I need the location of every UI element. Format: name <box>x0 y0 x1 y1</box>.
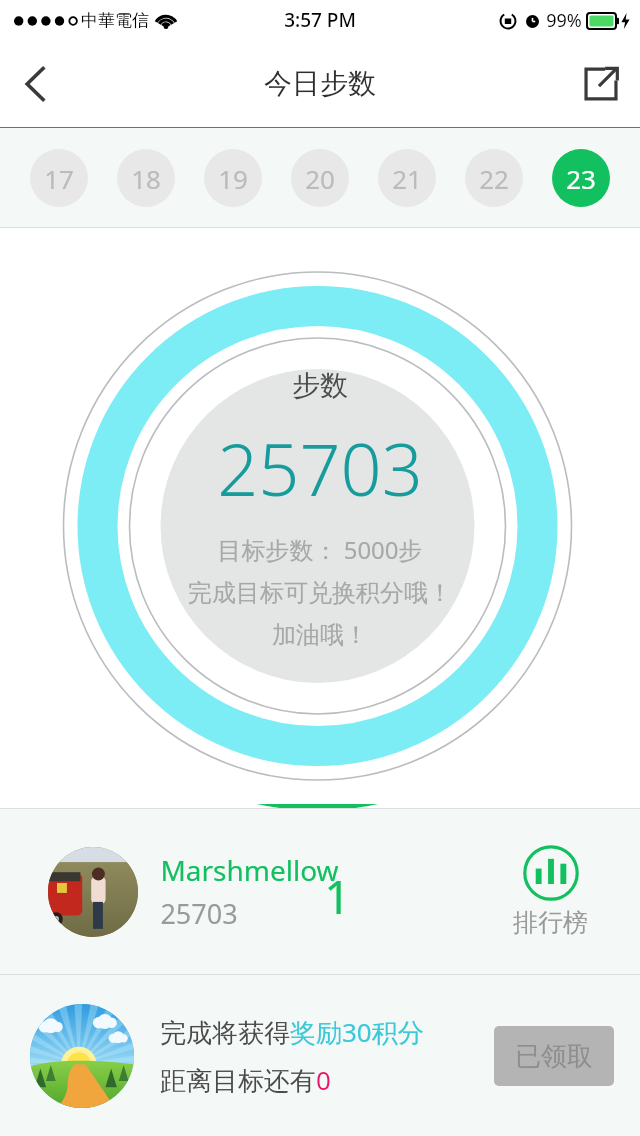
staticText: 23 <box>566 161 596 196</box>
staticText: 25703 <box>160 895 238 932</box>
button[interactable]: Back <box>0 48 72 120</box>
staticText: 目标步数： 5000步 <box>217 533 423 566</box>
button[interactable]: 18 <box>117 149 175 207</box>
staticText: 已领取 <box>515 1040 593 1073</box>
staticText: 18 <box>131 161 161 196</box>
staticText: 22 <box>479 161 509 196</box>
staticText: Marshmellow <box>160 851 339 889</box>
staticText: 完成目标可兑换积分哦！ <box>188 578 452 608</box>
staticText: 20 <box>305 161 335 196</box>
button[interactable]: 23 <box>552 149 610 207</box>
staticText: 99% <box>546 8 582 33</box>
staticText: 21 <box>392 161 422 196</box>
staticText: 加油哦！ <box>272 620 368 650</box>
button[interactable]: 19 <box>204 149 262 207</box>
staticText: 3:57 PM <box>284 7 356 33</box>
staticText: 19 <box>218 161 248 196</box>
staticText: 17 <box>44 161 74 196</box>
button[interactable]: 排行榜 <box>509 845 592 938</box>
staticText: 排行榜 <box>513 907 588 938</box>
button[interactable]: 已领取 <box>494 1026 614 1086</box>
button[interactable]: 21 <box>378 149 436 207</box>
staticText: 完成将获得奖励30积分 <box>160 1014 424 1050</box>
staticText: 步数 <box>292 368 348 403</box>
staticText: 25703 <box>217 419 423 517</box>
button[interactable]: 22 <box>465 149 523 207</box>
button[interactable]: Share <box>562 45 640 123</box>
staticText: 1 <box>324 865 351 928</box>
staticText: 中華電信 <box>81 10 149 31</box>
staticText: 今日步数 <box>264 66 376 101</box>
button[interactable]: 20 <box>291 149 349 207</box>
button[interactable]: Marshmellow <box>0 809 640 974</box>
button[interactable]: 17 <box>30 149 88 207</box>
staticText: 距离目标还有0 <box>160 1062 331 1098</box>
